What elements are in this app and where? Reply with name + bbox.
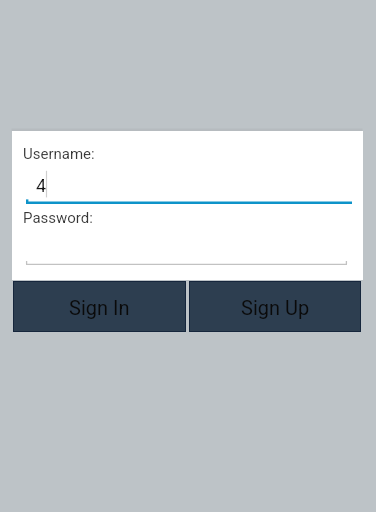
staticText: Sign Up — [241, 296, 310, 319]
staticText: 4 — [36, 175, 47, 196]
button[interactable]: Sign In — [13, 281, 186, 332]
button[interactable]: Sign Up — [189, 281, 361, 332]
button[interactable]: Username input field — [24, 168, 352, 204]
button[interactable]: Password input field — [24, 231, 348, 266]
staticText: Username: — [23, 145, 95, 163]
staticText: Password: — [23, 209, 93, 227]
staticText: Sign In — [69, 296, 130, 319]
